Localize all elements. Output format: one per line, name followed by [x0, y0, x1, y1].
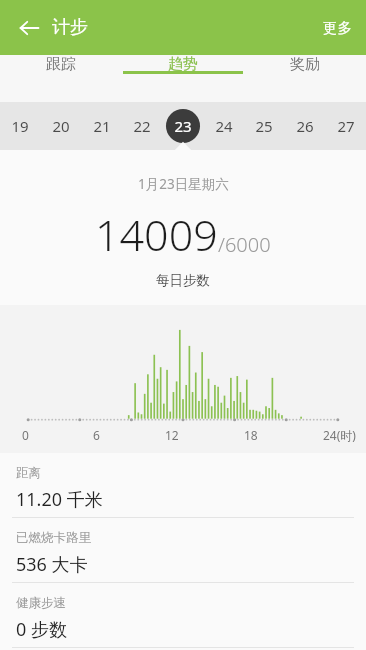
button[interactable]: 20 — [41, 102, 81, 150]
staticText: /6000 — [218, 231, 271, 258]
staticText: 趋势 — [168, 55, 198, 74]
staticText: 跟踪 — [46, 55, 76, 74]
button[interactable]: 已燃烧卡路里 — [0, 518, 366, 583]
staticText: 536 大卡 — [16, 552, 88, 577]
staticText: 1月23日星期六 — [138, 175, 229, 193]
button[interactable]: 22 — [122, 102, 162, 150]
button[interactable]: 24 — [204, 102, 244, 150]
button[interactable]: 健康步速 — [0, 583, 366, 648]
staticText: 已燃烧卡路里 — [16, 530, 91, 546]
button[interactable]: 趋势 — [122, 55, 244, 74]
staticText: 奖励 — [290, 55, 320, 74]
staticText: 27 — [337, 116, 355, 136]
button[interactable]: 25 — [244, 102, 284, 150]
staticText: 22 — [133, 116, 151, 136]
button[interactable]: 跟踪 — [0, 55, 122, 74]
button[interactable]: 19 — [0, 102, 40, 150]
staticText: 计步 — [52, 16, 88, 39]
staticText: 18 — [244, 427, 258, 443]
staticText: 23 — [174, 116, 192, 136]
button[interactable]: 23 — [163, 102, 203, 150]
staticText: 11.20 千米 — [16, 487, 103, 512]
button[interactable]: 更多 — [309, 9, 366, 47]
staticText: 24 — [215, 116, 233, 136]
staticText: 每日步数 — [156, 272, 210, 289]
staticText: 20 — [52, 116, 70, 136]
staticText: 14009 — [95, 205, 218, 264]
staticText: 19 — [11, 116, 29, 136]
staticText: 12 — [165, 427, 179, 443]
button[interactable]: 奖励 — [244, 55, 366, 74]
staticText: 距离 — [16, 465, 41, 481]
button[interactable]: 26 — [285, 102, 325, 150]
staticText: 0 — [22, 427, 29, 443]
button[interactable]: 距离 — [0, 453, 366, 518]
staticText: 21 — [93, 116, 111, 136]
staticText: 更多 — [323, 19, 352, 37]
button[interactable]: 27 — [326, 102, 366, 150]
staticText: 25 — [255, 116, 273, 136]
button[interactable]: 21 — [82, 102, 122, 150]
staticText: 健康步速 — [16, 595, 66, 611]
staticText: 0 步数 — [16, 617, 67, 642]
button[interactable]: Back — [10, 9, 48, 47]
staticText: 24(时) — [323, 427, 356, 443]
staticText: 26 — [296, 116, 314, 136]
staticText: 6 — [93, 427, 100, 443]
